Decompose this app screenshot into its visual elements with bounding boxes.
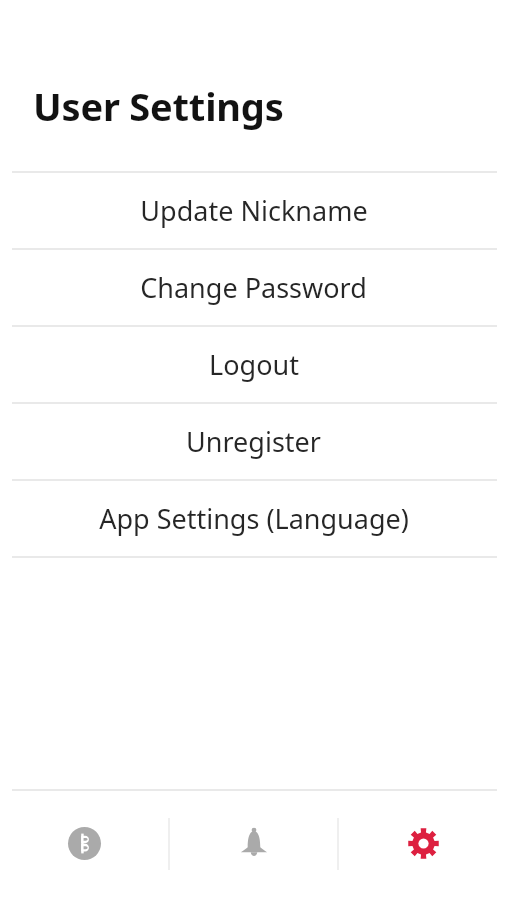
button[interactable]: Settings [339,791,507,900]
staticText: Logout [209,346,299,383]
button[interactable]: Change Password [0,250,507,325]
button[interactable]: Logout [0,327,507,402]
button[interactable]: App Settings (Language) [0,481,507,556]
staticText: Change Password [140,269,367,306]
staticText: User Settings [33,80,284,132]
button[interactable]: Notifications [170,791,337,900]
staticText: App Settings (Language) [99,500,409,537]
staticText: Unregister [186,423,321,460]
button[interactable]: Currency [0,791,168,900]
staticText: Update Nickname [140,192,368,229]
button[interactable]: Update Nickname [0,173,507,248]
button[interactable]: Unregister [0,404,507,479]
